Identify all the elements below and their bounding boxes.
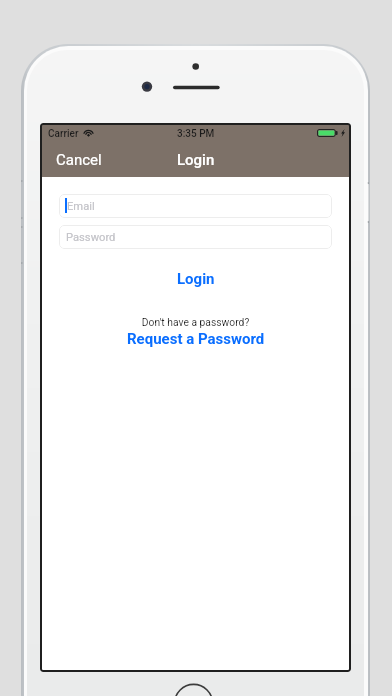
staticText: Password [66, 231, 116, 244]
staticText: Don't have a password? [59, 316, 332, 328]
staticText: Email [67, 200, 95, 213]
staticText: Request a Password [127, 330, 265, 348]
staticText: Login [177, 151, 215, 169]
button[interactable]: Login [59, 270, 332, 288]
button[interactable]: Email [59, 194, 332, 218]
button[interactable]: Password [59, 225, 332, 249]
staticText: Cancel [56, 151, 102, 169]
button[interactable]: Request a Password [59, 330, 332, 348]
button[interactable]: Cancel [42, 146, 112, 174]
staticText: 3:35 PM [177, 128, 215, 140]
staticText: Carrier [48, 128, 79, 140]
staticText: Login [177, 270, 215, 288]
